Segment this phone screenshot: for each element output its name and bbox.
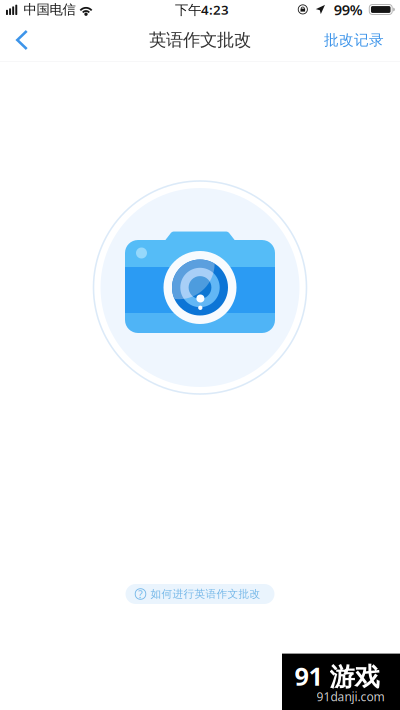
staticText: 下午4:23 (175, 1, 229, 18)
button[interactable]: 批改记录 (310, 19, 398, 61)
staticText: 99% (334, 0, 363, 19)
staticText: ? (138, 587, 143, 601)
button[interactable]: ? (125, 584, 274, 604)
staticText: 中国电信 (23, 1, 75, 18)
button[interactable]: 返回 (2, 19, 42, 61)
staticText: 91 游戏 (294, 659, 379, 693)
staticText: 91danji.com (316, 689, 384, 704)
staticText: 如何进行英语作文批改 (150, 587, 260, 600)
staticText: 批改记录 (324, 31, 384, 49)
staticText: 英语作文批改 (149, 29, 251, 51)
